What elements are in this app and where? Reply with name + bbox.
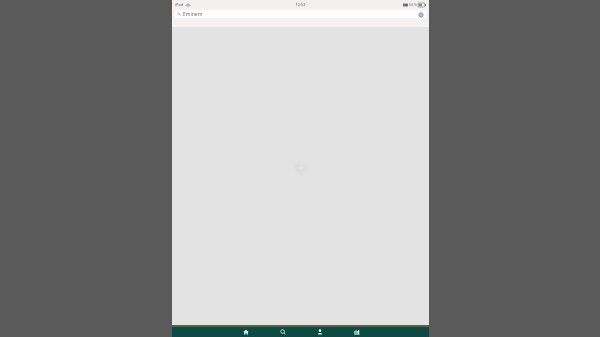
button[interactable]: Eminem [175,10,426,18]
button[interactable]: Library [338,327,375,337]
button[interactable]: Search [264,327,301,337]
button[interactable]: Home [227,327,264,337]
staticText: Eminem [183,11,203,18]
staticText: 12:52 [295,2,306,7]
staticText: 64 % [409,2,417,7]
button[interactable]: Profile [301,327,338,337]
staticText: iPad [175,2,184,7]
button[interactable]: Settings [417,11,424,18]
